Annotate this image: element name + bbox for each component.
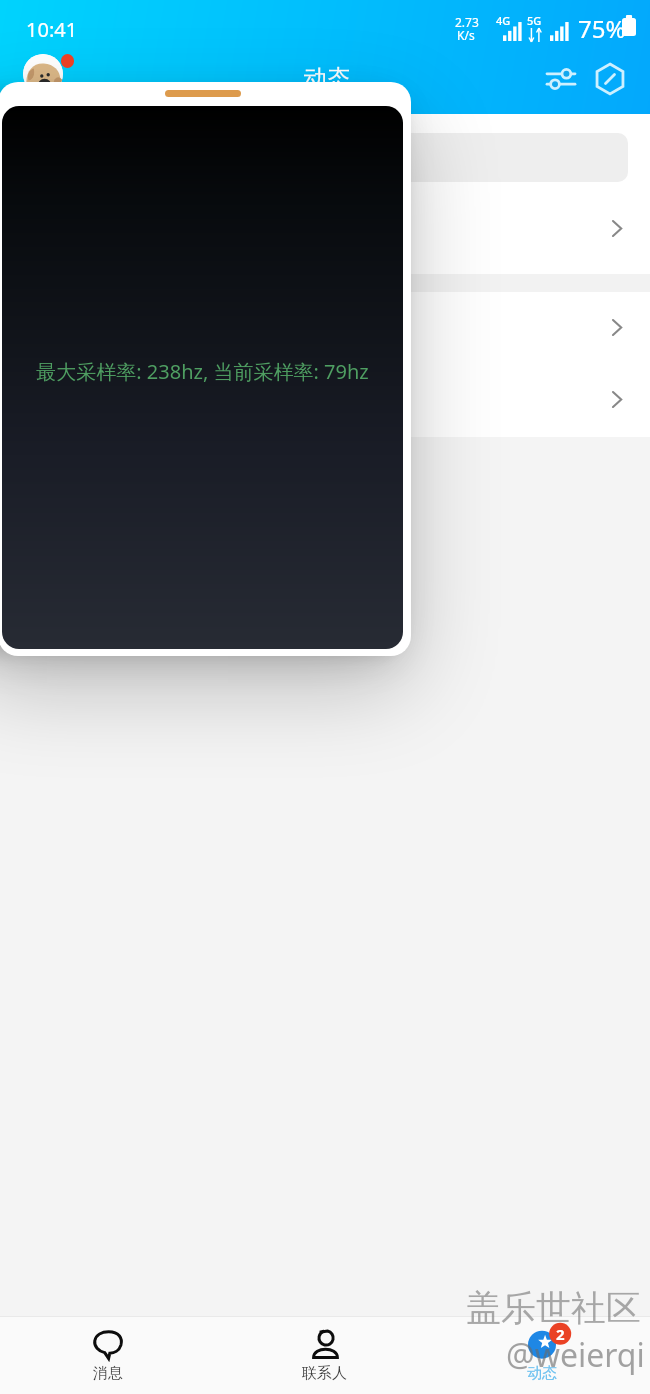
staticText: @weierqi <box>506 1333 645 1377</box>
staticText: 4G <box>496 13 511 28</box>
staticText: 联系人 <box>302 1364 347 1383</box>
button[interactable] <box>22 133 628 182</box>
staticText: 5G <box>527 13 542 28</box>
staticText: 2.73 <box>455 14 479 30</box>
button[interactable]: 联系人 <box>216 1317 433 1394</box>
button[interactable] <box>0 362 650 437</box>
staticText: 2 <box>556 1324 565 1344</box>
button[interactable] <box>0 292 650 362</box>
button[interactable]: Filter <box>537 56 585 102</box>
staticText: 最大采样率: 238hz, 当前采样率: 79hz <box>2 358 403 385</box>
staticText: 盖乐世社区 <box>466 1286 641 1330</box>
staticText: 75% <box>578 12 626 45</box>
staticText: K/s <box>457 27 475 43</box>
button[interactable]: 消息 <box>0 1317 216 1394</box>
staticText: 动态 <box>304 64 350 93</box>
button[interactable]: 2 <box>433 1317 650 1394</box>
button[interactable] <box>0 182 650 274</box>
staticText: 消息 <box>93 1364 123 1383</box>
staticText: 10:41 <box>26 16 78 43</box>
button[interactable]: Scan code <box>586 56 634 102</box>
staticText: 动态 <box>527 1364 557 1383</box>
button[interactable]: Profile <box>23 54 63 94</box>
